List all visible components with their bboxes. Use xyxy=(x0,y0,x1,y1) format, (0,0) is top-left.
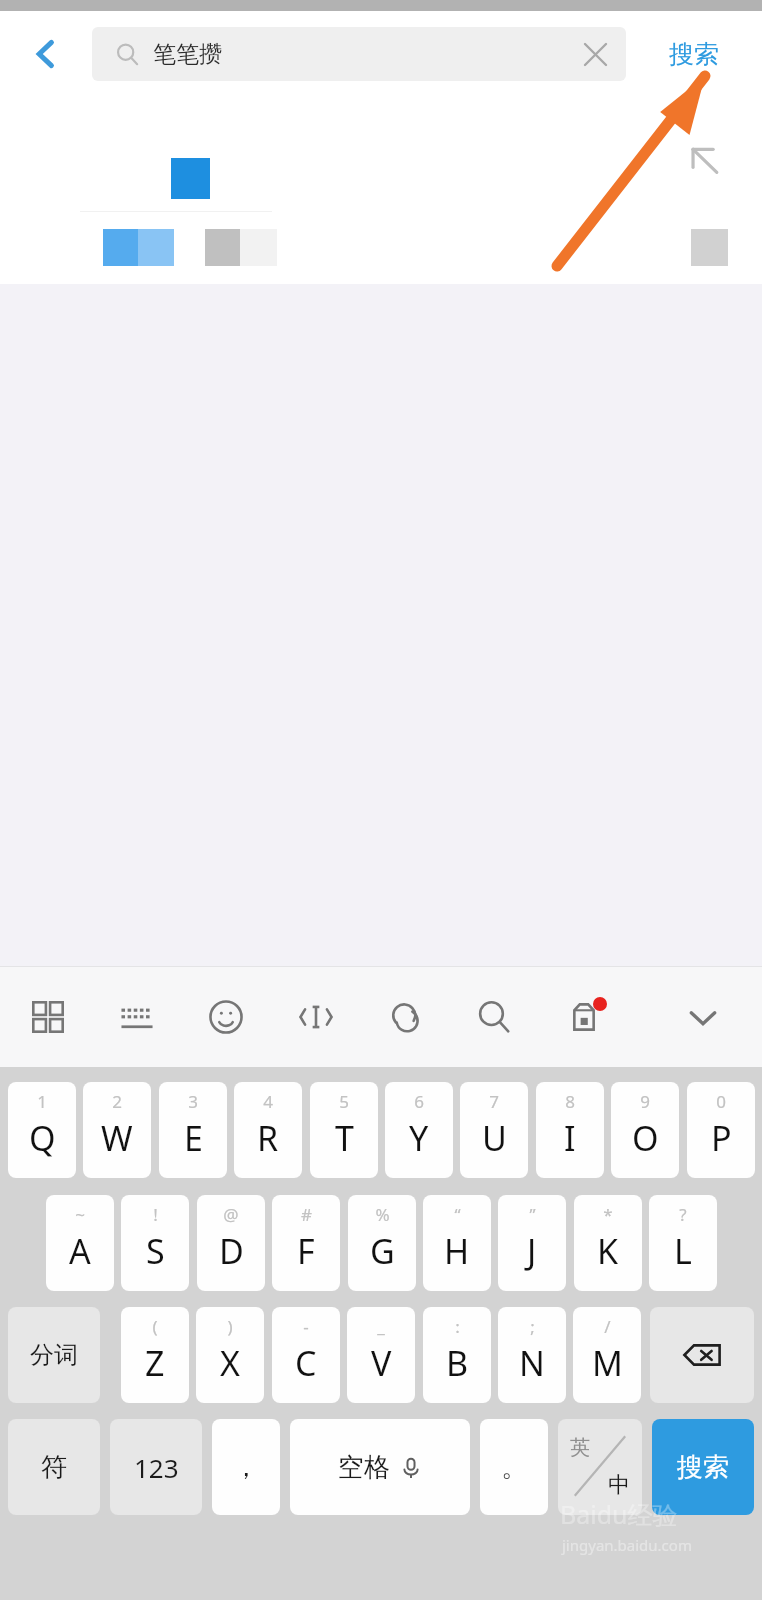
button[interactable]: 分词 xyxy=(8,1307,100,1403)
button[interactable]: Switch English Chinese xyxy=(558,1419,642,1515)
staticText: 6 xyxy=(414,1090,424,1113)
staticText: Y xyxy=(409,1115,429,1161)
button[interactable]: 4 xyxy=(234,1082,302,1178)
staticText: ~ xyxy=(75,1203,85,1226)
button[interactable]: 。 xyxy=(480,1419,548,1515)
button[interactable]: 7 xyxy=(460,1082,528,1178)
staticText: V xyxy=(371,1340,392,1386)
staticText: Q xyxy=(29,1115,56,1161)
button[interactable]: @ xyxy=(197,1195,265,1291)
staticText: ; xyxy=(530,1315,535,1338)
staticText: 搜索 xyxy=(677,1451,729,1484)
button[interactable]: Text cursor xyxy=(276,976,356,1058)
staticText: % xyxy=(375,1203,390,1226)
staticText: D xyxy=(219,1228,244,1274)
button[interactable]: 空格 xyxy=(290,1419,470,1515)
button[interactable]: 5 xyxy=(310,1082,378,1178)
staticText: 1 xyxy=(37,1090,47,1113)
staticText: 中 xyxy=(608,1471,630,1499)
button[interactable]: ， xyxy=(212,1419,280,1515)
staticText: 7 xyxy=(489,1090,499,1113)
button[interactable]: ? xyxy=(649,1195,717,1291)
staticText: ) xyxy=(227,1315,233,1338)
staticText: 分词 xyxy=(30,1340,78,1370)
staticText: 英 xyxy=(570,1435,590,1460)
staticText: S xyxy=(146,1228,165,1274)
button[interactable]: 9 xyxy=(611,1082,679,1178)
button[interactable]: 6 xyxy=(385,1082,453,1178)
staticText: H xyxy=(444,1228,470,1274)
staticText: jingyan.baidu.com xyxy=(562,1535,692,1555)
staticText: 8 xyxy=(565,1090,575,1113)
button[interactable]: # xyxy=(272,1195,340,1291)
staticText: # xyxy=(301,1203,312,1226)
staticText: ! xyxy=(153,1203,158,1226)
staticText: L xyxy=(674,1228,692,1274)
staticText: @ xyxy=(223,1203,239,1226)
button[interactable]: / xyxy=(573,1307,641,1403)
staticText: 2 xyxy=(112,1090,122,1113)
button[interactable]: Keyboard layout xyxy=(97,976,177,1058)
button[interactable]: Emoji xyxy=(186,976,266,1058)
staticText: K xyxy=(597,1228,619,1274)
button[interactable]: Back xyxy=(0,11,92,97)
button[interactable]: 1 xyxy=(8,1082,76,1178)
button[interactable]: Hide keyboard xyxy=(663,976,743,1058)
staticText: ， xyxy=(233,1451,259,1484)
button[interactable]: 符 xyxy=(8,1419,100,1515)
staticText: R xyxy=(257,1115,279,1161)
staticText: 4 xyxy=(263,1090,273,1113)
button[interactable]: ” xyxy=(498,1195,566,1291)
button[interactable]: 0 xyxy=(687,1082,755,1178)
staticText: ? xyxy=(679,1203,687,1226)
button[interactable]: ! xyxy=(121,1195,189,1291)
button[interactable]: % xyxy=(348,1195,416,1291)
button[interactable]: Panels xyxy=(8,976,88,1058)
staticText: M xyxy=(592,1340,623,1386)
staticText: 5 xyxy=(339,1090,349,1113)
button[interactable]: Search xyxy=(454,976,534,1058)
button[interactable]: - xyxy=(272,1307,340,1403)
staticText: _ xyxy=(377,1315,385,1338)
button[interactable]: ) xyxy=(196,1307,264,1403)
button[interactable]: 搜索 xyxy=(652,1419,754,1515)
staticText: 9 xyxy=(640,1090,650,1113)
button[interactable]: 8 xyxy=(536,1082,604,1178)
button[interactable]: 3 xyxy=(159,1082,227,1178)
staticText: 空格 xyxy=(338,1451,390,1484)
button[interactable]: ( xyxy=(121,1307,189,1403)
staticText: / xyxy=(604,1315,611,1338)
button[interactable]: Voice input xyxy=(365,976,445,1058)
staticText: J xyxy=(527,1228,537,1274)
button[interactable]: Backspace xyxy=(650,1307,754,1403)
staticText: U xyxy=(482,1115,507,1161)
button[interactable]: 笔笔攒 xyxy=(92,27,626,81)
button[interactable]: Clear text xyxy=(564,27,626,81)
button[interactable]: 2 xyxy=(83,1082,151,1178)
staticText: T xyxy=(335,1115,354,1161)
staticText: X xyxy=(220,1340,240,1386)
staticText: F xyxy=(297,1228,315,1274)
button[interactable]: 搜索 xyxy=(626,11,762,97)
staticText: I xyxy=(564,1115,576,1161)
staticText: ( xyxy=(152,1315,158,1338)
staticText: 。 xyxy=(501,1451,527,1484)
staticText: ” xyxy=(529,1203,536,1226)
button[interactable]: Store xyxy=(544,976,624,1058)
staticText: B xyxy=(446,1340,469,1386)
button[interactable]: 123 xyxy=(110,1419,202,1515)
staticText: - xyxy=(303,1315,309,1338)
button[interactable]: * xyxy=(574,1195,642,1291)
staticText: O xyxy=(632,1115,659,1161)
button[interactable]: ; xyxy=(498,1307,566,1403)
staticText: 0 xyxy=(716,1090,726,1113)
staticText: E xyxy=(184,1115,203,1161)
button[interactable]: : xyxy=(423,1307,491,1403)
button[interactable]: _ xyxy=(347,1307,415,1403)
button[interactable]: “ xyxy=(423,1195,491,1291)
staticText: 笔笔攒 xyxy=(153,40,222,69)
staticText: Baidu经验 xyxy=(560,1497,678,1531)
staticText: N xyxy=(519,1340,545,1386)
staticText: 符 xyxy=(41,1451,67,1484)
button[interactable]: ~ xyxy=(46,1195,114,1291)
